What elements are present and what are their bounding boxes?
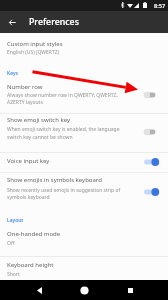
staticText: symbols keyboard bbox=[7, 194, 50, 201]
staticText: Number row bbox=[7, 83, 43, 91]
staticText: One-handed mode bbox=[7, 230, 61, 238]
staticText: Keyboard height bbox=[7, 261, 54, 269]
button[interactable] bbox=[0, 33, 168, 60]
button[interactable] bbox=[0, 257, 168, 281]
button[interactable] bbox=[0, 114, 168, 152]
staticText: Custom input styles bbox=[7, 40, 63, 48]
button[interactable] bbox=[0, 173, 168, 211]
staticText: Keys bbox=[7, 70, 19, 77]
staticText: When emoji switch key is enabled, the la… bbox=[7, 126, 120, 133]
staticText: Preferences bbox=[29, 16, 79, 28]
button[interactable]: Recent apps bbox=[117, 280, 143, 300]
button[interactable] bbox=[0, 223, 168, 256]
staticText: Show emoji switch key bbox=[7, 116, 71, 124]
staticText: Show emojis in symbols keyboard bbox=[7, 176, 102, 184]
staticText: Always show number row in QWERTY, QWERTZ… bbox=[7, 92, 118, 99]
staticText: 8:57 bbox=[154, 2, 166, 10]
staticText: switch key cannot be shown bbox=[7, 134, 73, 141]
staticText: AZERTY layouts bbox=[7, 99, 43, 106]
staticText: Show recently used emojis in suggestion … bbox=[7, 187, 121, 194]
button[interactable]: Back bbox=[26, 280, 52, 300]
button[interactable] bbox=[0, 77, 168, 113]
staticText: Off bbox=[7, 240, 15, 247]
staticText: Layout bbox=[7, 217, 24, 224]
staticText: Short bbox=[7, 271, 20, 278]
staticText: English (US) (QWERTZ) bbox=[7, 49, 60, 56]
button[interactable]: Home bbox=[71, 280, 97, 300]
button[interactable] bbox=[0, 153, 168, 172]
staticText: Voice input key bbox=[7, 157, 50, 165]
button[interactable]: Navigate up bbox=[1, 11, 23, 33]
